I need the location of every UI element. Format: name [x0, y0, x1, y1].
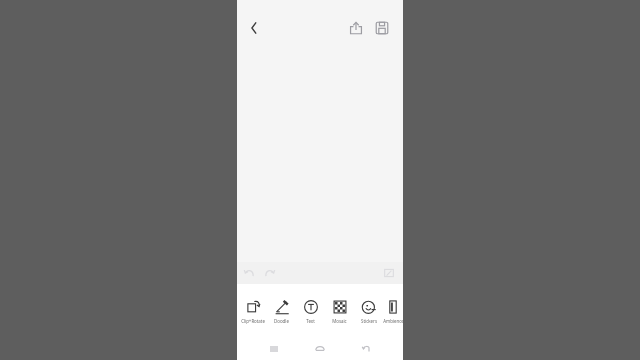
staticText: Doodle: [274, 318, 289, 324]
button[interactable]: Back: [357, 340, 375, 358]
button[interactable]: Aspect ratio: [383, 267, 395, 279]
button[interactable]: Back: [243, 16, 267, 40]
button[interactable]: Clip+Rotate: [238, 284, 267, 338]
staticText: Text: [306, 318, 315, 324]
staticText: Clip+Rotate: [241, 318, 265, 324]
button[interactable]: Home: [311, 340, 329, 358]
button[interactable]: Doodle: [267, 284, 296, 338]
button[interactable]: Redo: [263, 267, 276, 280]
button[interactable]: Stickers: [354, 284, 383, 338]
staticText: Stickers: [361, 318, 377, 324]
button[interactable]: Recent apps: [265, 340, 283, 358]
button[interactable]: Save: [374, 20, 390, 36]
button[interactable]: Mosaic: [325, 284, 354, 338]
button[interactable]: Ambience: [383, 284, 403, 338]
staticText: Mosaic: [332, 318, 347, 324]
button[interactable]: Text: [296, 284, 325, 338]
button[interactable]: Undo: [243, 267, 256, 280]
staticText: Ambience: [383, 318, 403, 324]
button[interactable]: Share: [348, 20, 364, 36]
